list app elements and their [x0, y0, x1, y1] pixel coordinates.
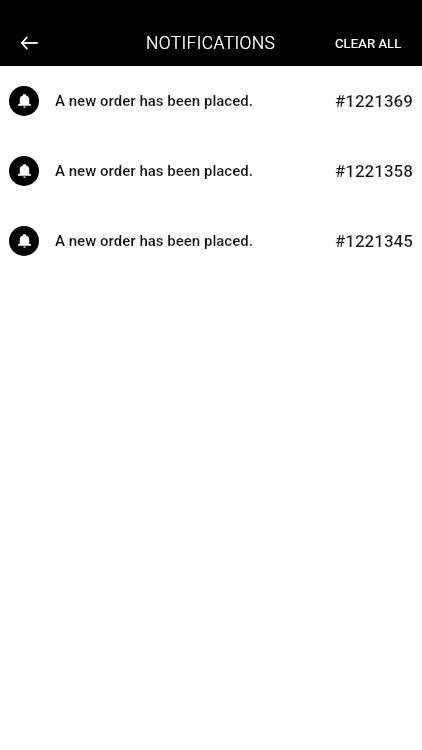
button[interactable]: A new order has been placed. [0, 136, 422, 206]
staticText: NOTIFICATIONS [146, 33, 276, 54]
staticText: CLEAR ALL [335, 36, 402, 51]
staticText: A new order has been placed. [55, 92, 335, 110]
staticText: A new order has been placed. [55, 232, 335, 250]
staticText: A new order has been placed. [55, 162, 335, 180]
staticText: #1221358 [335, 161, 413, 181]
button[interactable]: Back [7, 21, 51, 65]
button[interactable]: A new order has been placed. [0, 206, 422, 276]
button[interactable]: A new order has been placed. [0, 66, 422, 136]
staticText: #1221369 [335, 91, 413, 111]
button[interactable]: CLEAR ALL [319, 26, 422, 61]
staticText: #1221345 [335, 231, 413, 251]
